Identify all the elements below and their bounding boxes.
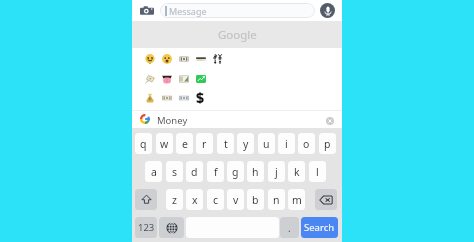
staticText: v [233,193,239,207]
button[interactable]: Microphone [320,3,335,18]
staticText: z [172,193,177,207]
button[interactable]: Backspace [315,189,337,210]
button[interactable]: t [217,133,234,154]
button[interactable]: Emoji [175,69,192,88]
staticText: Money [157,114,188,127]
staticText: f [214,165,218,179]
staticText: q [140,137,147,151]
button[interactable]: 123 [135,217,157,238]
button[interactable]: s [166,161,183,182]
staticText: l [316,165,319,179]
button[interactable]: Emoji [192,88,209,107]
button[interactable]: w [156,133,173,154]
button[interactable]: Shift [135,189,157,210]
button[interactable]: p [319,133,336,154]
button[interactable]: j [268,161,285,182]
staticText: d [191,165,198,179]
staticText: s [172,165,178,179]
staticText: i [285,137,288,151]
staticText: 123 [138,221,155,234]
button[interactable]: r [196,133,213,154]
button[interactable]: z [166,189,183,210]
staticText: w [160,137,169,151]
staticText: m [292,193,302,207]
button[interactable]: Emoji [158,88,175,107]
button[interactable]: Search [301,217,338,238]
button[interactable]: Emoji [209,49,226,68]
button[interactable]: l [309,161,326,182]
button[interactable]: a [145,161,162,182]
button[interactable]: d [186,161,203,182]
staticText: p [324,137,331,151]
staticText: $ [196,88,205,107]
staticText: t [224,137,228,151]
staticText: e [182,137,188,151]
button[interactable]: Emoji [192,49,209,68]
button[interactable]: Emoji [141,69,158,88]
button[interactable]: Emoji [141,88,158,107]
staticText: c [213,193,219,207]
staticText: . [288,221,291,235]
button[interactable]: Emoji [192,69,209,88]
button[interactable]: Emoji [158,49,175,68]
button[interactable]: k [288,161,305,182]
button[interactable]: i [278,133,295,154]
staticText: j [275,165,278,179]
staticText: r [202,137,207,151]
button[interactable]: v [227,189,244,210]
button[interactable]: Emoji [175,49,192,68]
button[interactable]: Clear text [326,117,334,125]
staticText: n [273,193,280,207]
button[interactable]: Emoji [175,88,192,107]
staticText: x [192,193,198,207]
button[interactable]: m [288,189,305,210]
button[interactable]: h [247,161,264,182]
staticText: b [252,193,259,207]
staticText: k [294,165,300,179]
button[interactable]: u [258,133,275,154]
button[interactable]: Money [132,110,342,128]
button[interactable]: f [207,161,224,182]
button[interactable]: Camera [140,4,154,18]
button[interactable]: Emoji [158,69,175,88]
button[interactable]: n [268,189,285,210]
button[interactable]: e [176,133,193,154]
staticText: Message [169,5,207,17]
button[interactable]: g [227,161,244,182]
button[interactable]: c [207,189,224,210]
button[interactable]: x [186,189,203,210]
staticText: Search [304,221,335,234]
button[interactable]: q [135,133,152,154]
staticText: a [151,165,157,179]
button[interactable]: Message [160,3,315,18]
staticText: o [303,137,310,151]
staticText: h [252,165,259,179]
button[interactable]: Emoji [141,49,158,68]
button[interactable]: o [298,133,315,154]
button[interactable]: b [247,189,264,210]
button[interactable]: Switch keyboard [159,217,184,238]
button[interactable]: y [237,133,254,154]
button[interactable]: . [280,217,299,238]
staticText: y [243,137,249,151]
staticText: g [232,165,239,179]
staticText: u [263,137,270,151]
staticText: Google [218,27,257,43]
